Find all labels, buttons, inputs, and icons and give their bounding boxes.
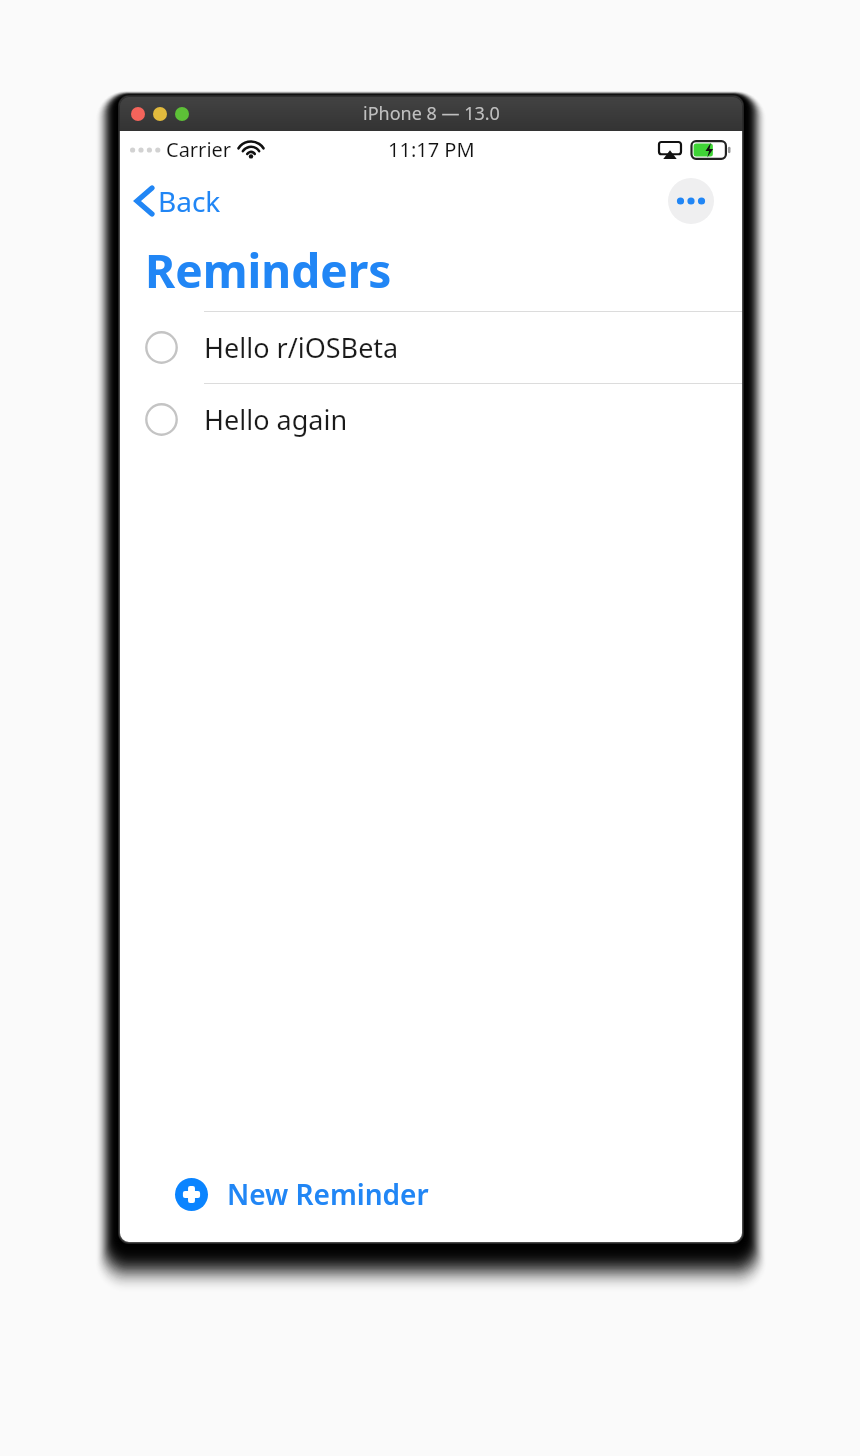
staticText: Reminders <box>145 239 392 302</box>
button[interactable]: Hello r/iOSBeta <box>119 312 743 383</box>
staticText: Hello again <box>204 401 348 438</box>
staticText: iPhone 8 — 13.0 <box>363 101 500 126</box>
button[interactable]: New Reminder <box>119 1163 743 1225</box>
button[interactable]: Back <box>119 176 231 226</box>
button[interactable]: Hello again <box>119 384 743 455</box>
staticText: New Reminder <box>227 1175 429 1213</box>
staticText: Back <box>158 182 221 220</box>
staticText: 11:17 PM <box>388 136 475 163</box>
staticText: Carrier <box>166 136 232 163</box>
staticText: Hello r/iOSBeta <box>204 329 399 366</box>
button[interactable]: More options <box>668 178 714 224</box>
